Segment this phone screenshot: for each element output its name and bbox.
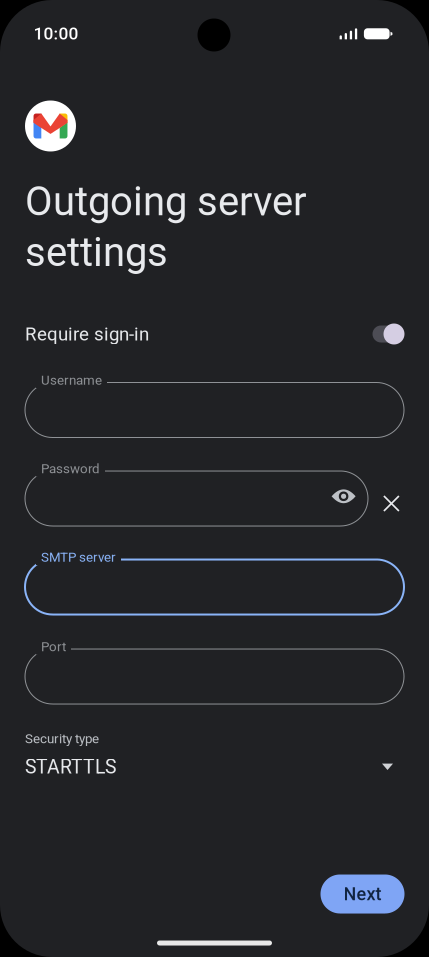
button[interactable]: SMTP server: [25, 559, 404, 614]
button[interactable]: Next: [320, 874, 404, 913]
button[interactable]: Port: [25, 649, 404, 704]
button[interactable]: Clear password: [374, 486, 408, 520]
staticText: STARTTLS: [25, 755, 116, 778]
button[interactable]: Username: [25, 382, 404, 437]
staticText: SMTP server: [41, 549, 116, 565]
staticText: Port: [41, 639, 66, 655]
button[interactable]: Security type: [25, 731, 404, 778]
staticText: Password: [41, 461, 100, 477]
button[interactable]: Password: [25, 471, 368, 526]
staticText: Require sign-in: [25, 323, 149, 345]
staticText: settings: [25, 229, 168, 276]
staticText: Next: [343, 883, 381, 905]
staticText: Outgoing server: [25, 178, 307, 225]
staticText: 10:00: [33, 23, 78, 44]
staticText: Username: [41, 372, 102, 388]
button[interactable]: Require sign-in: [25, 316, 404, 352]
staticText: Security type: [25, 731, 99, 746]
